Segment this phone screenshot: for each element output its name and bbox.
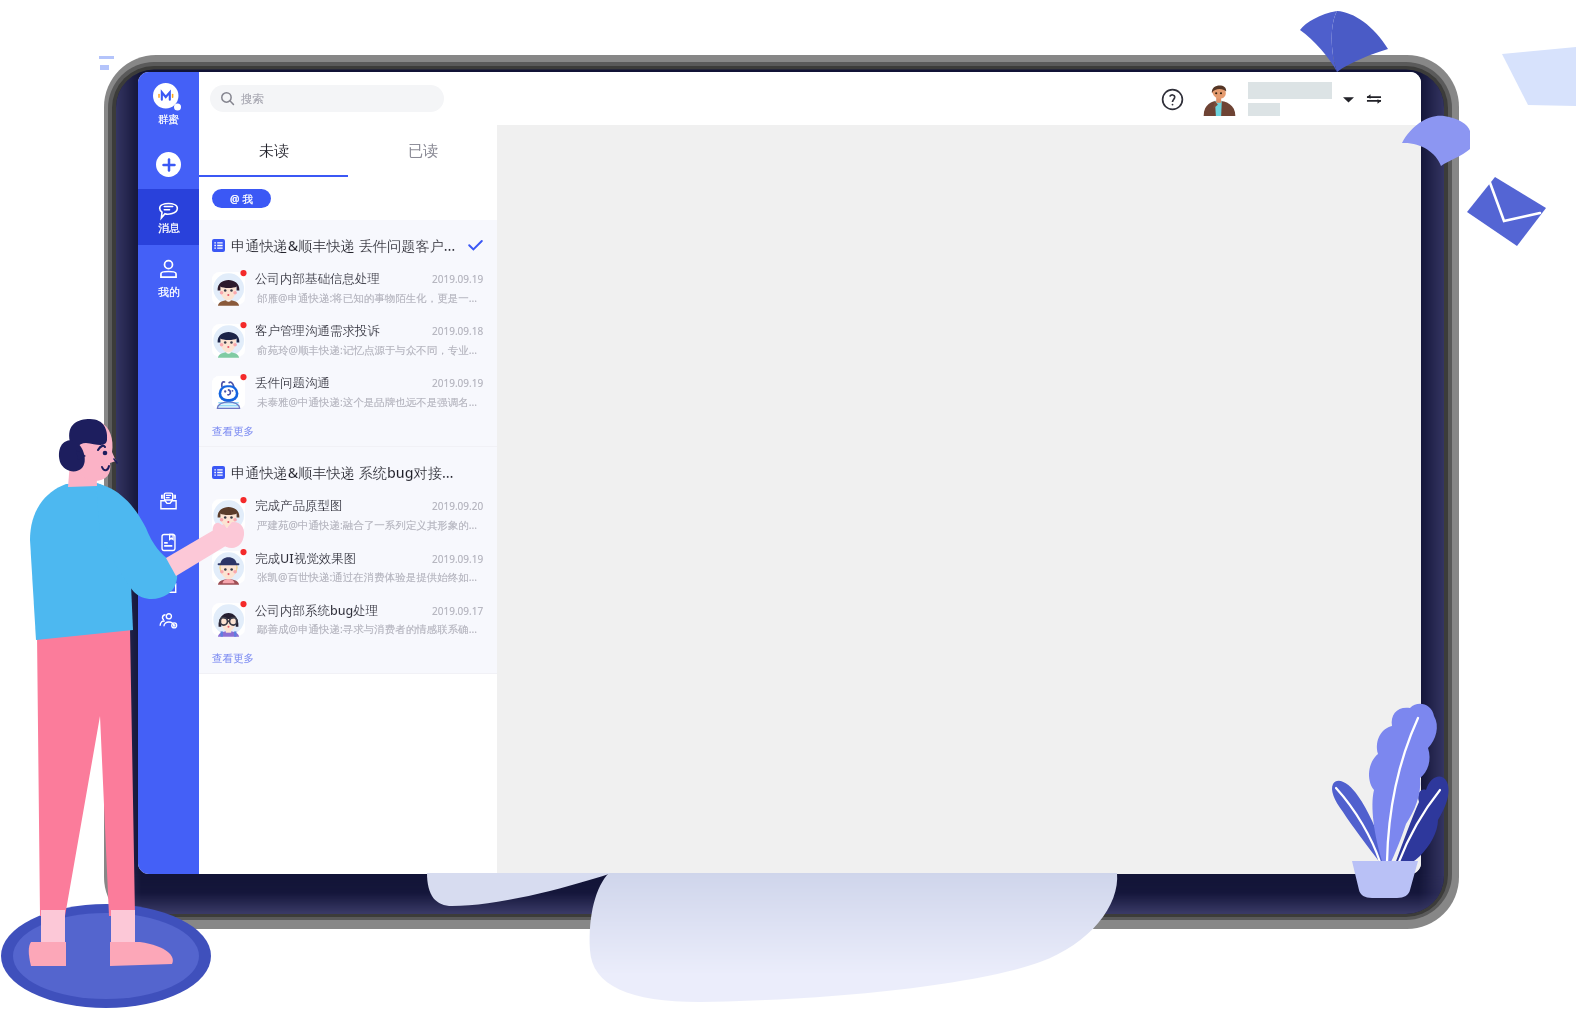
staticText: 已读	[408, 142, 438, 161]
button[interactable]: 申通快递&顺丰快递 系统bug对接…	[199, 447, 497, 489]
staticText: 鄢善成@申通快递:寻求与消费者的情感联系确…	[257, 622, 478, 636]
staticText: 未泰雅@中通快递:这个是品牌也远不是强调名…	[257, 395, 478, 409]
button[interactable]: 完成UI视觉效果图	[199, 541, 497, 593]
button[interactable]: 公司内部基础信息处理	[199, 262, 497, 314]
staticText: 公司内部系统bug处理	[255, 602, 432, 619]
staticText: 丢件问题沟通	[255, 375, 432, 391]
staticText: 俞苑玲@顺丰快递:记忆点源于与众不同，专业…	[257, 343, 478, 357]
staticText: @ 我	[230, 192, 253, 206]
button[interactable]: Inbox	[153, 486, 183, 516]
button[interactable]: 完成产品原型图	[199, 489, 497, 541]
staticText: 张凯@百世快递:通过在消费体验是提供始终如…	[257, 570, 478, 584]
staticText: 严建苑@中通快递:融合了一系列定义其形象的…	[257, 518, 478, 532]
staticText: 搜索	[241, 92, 264, 106]
staticText: 客户管理沟通需求投诉	[255, 323, 432, 339]
button[interactable]: 客户管理沟通需求投诉	[199, 314, 497, 366]
button[interactable]: 申通快递&顺丰快递 丢件问题客户…	[199, 220, 497, 262]
button[interactable]: Switch	[1363, 88, 1385, 110]
staticText: 申通快递&顺丰快递 丢件问题客户…	[231, 236, 464, 255]
button[interactable]: 已读	[348, 125, 497, 177]
button[interactable]: 查看更多	[212, 652, 254, 665]
button[interactable]: Expand	[1338, 89, 1358, 109]
staticText: 群蜜	[158, 113, 179, 126]
staticText: 完成产品原型图	[255, 498, 432, 514]
staticText: 2019.09.19	[432, 376, 484, 390]
staticText: 未读	[259, 142, 289, 161]
staticText: 2019.09.18	[432, 324, 484, 338]
button[interactable]: Team	[153, 605, 183, 635]
button[interactable]: 搜索	[210, 85, 444, 112]
button[interactable]: Files	[153, 527, 183, 557]
button[interactable]: Help	[1160, 87, 1184, 111]
staticText: 邰雁@申通快递:将已知的事物陌生化，更是一…	[257, 291, 478, 305]
staticText: 我的	[158, 285, 180, 299]
button[interactable]: @ 我	[212, 189, 271, 208]
button[interactable]: 未读	[199, 125, 348, 177]
button[interactable]: New message	[156, 152, 181, 177]
staticText: 消息	[158, 221, 180, 235]
button[interactable]: 丢件问题沟通	[199, 366, 497, 418]
button[interactable]: 查看更多	[212, 425, 254, 438]
staticText: 申通快递&顺丰快递 系统bug对接…	[231, 463, 483, 482]
button[interactable]: 公司内部系统bug处理	[199, 593, 497, 645]
button[interactable]: 消息	[138, 189, 199, 245]
button[interactable]: Account	[1203, 82, 1332, 116]
staticText: 2019.09.17	[432, 604, 484, 618]
button[interactable]: 群蜜 home	[138, 83, 199, 131]
staticText: 公司内部基础信息处理	[255, 271, 432, 287]
staticText: 2019.09.19	[432, 552, 484, 566]
button[interactable]: Folder	[153, 571, 183, 601]
staticText: 2019.09.20	[432, 499, 484, 513]
button[interactable]: 我的	[138, 245, 199, 301]
staticText: 完成UI视觉效果图	[255, 550, 432, 567]
staticText: 2019.09.19	[432, 272, 484, 286]
